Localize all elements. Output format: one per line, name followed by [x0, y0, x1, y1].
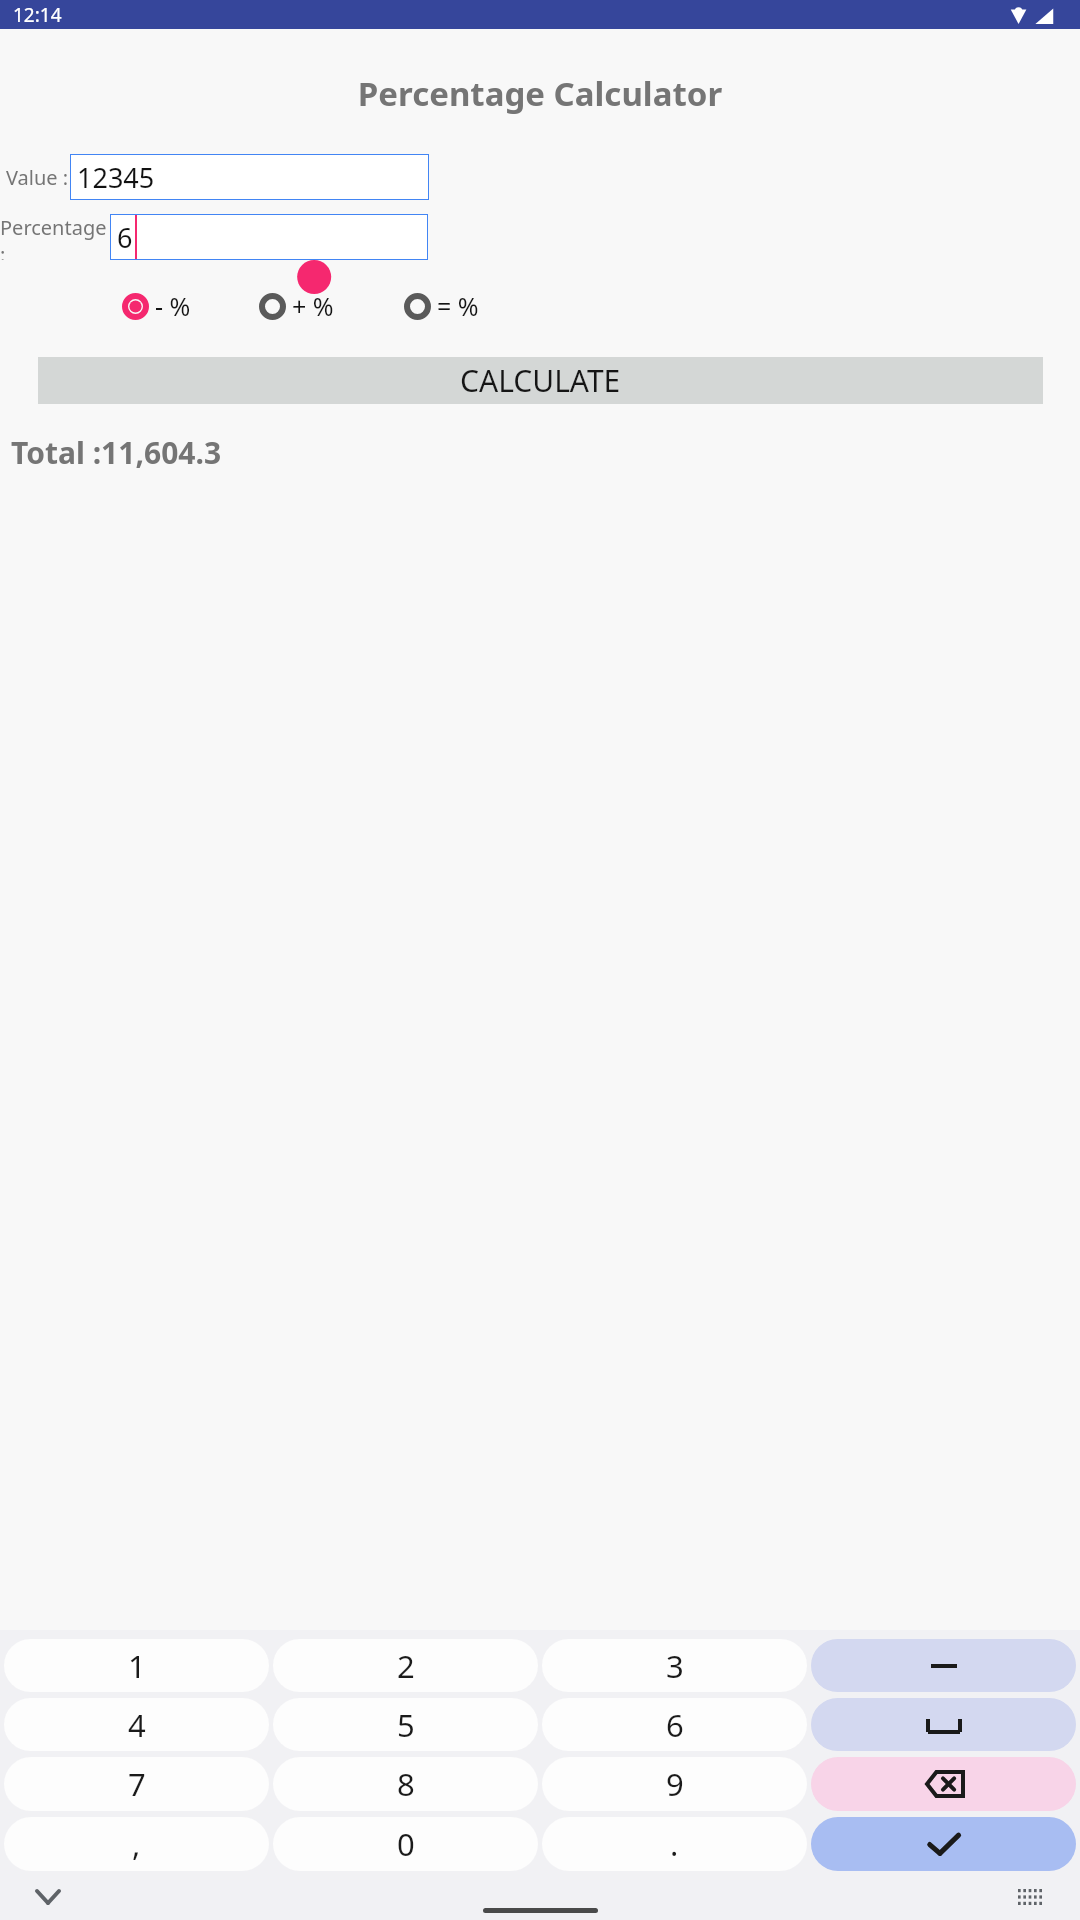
staticText: 7: [128, 1763, 146, 1805]
staticText: 8: [397, 1763, 415, 1805]
staticText: Total :11,604.3: [11, 432, 222, 473]
staticText: .: [670, 1823, 679, 1865]
button[interactable]: 5: [273, 1698, 538, 1751]
button[interactable]: = %: [402, 289, 481, 323]
button[interactable]: + %: [257, 289, 336, 323]
staticText: = %: [437, 289, 479, 323]
button[interactable]: ,: [4, 1817, 269, 1871]
staticText: 6: [666, 1704, 684, 1746]
staticText: 1: [128, 1645, 146, 1687]
button[interactable]: 1: [4, 1639, 269, 1692]
button[interactable]: 2: [273, 1639, 538, 1692]
button[interactable]: Hide keyboard: [30, 1879, 66, 1915]
staticText: 2: [397, 1645, 415, 1687]
staticText: Percentage Calculator: [0, 71, 1080, 116]
staticText: CALCULATE: [460, 360, 621, 401]
staticText: 4: [128, 1704, 146, 1746]
staticText: 12:14: [13, 2, 62, 28]
button[interactable]: 6: [110, 214, 428, 260]
staticText: Value :: [6, 164, 69, 191]
button[interactable]: 9: [542, 1757, 807, 1811]
button[interactable]: .: [542, 1817, 807, 1871]
staticText: 12:14: [13, 2, 62, 28]
button[interactable]: Change keyboard: [1012, 1879, 1048, 1915]
button[interactable]: 7: [4, 1757, 269, 1811]
button[interactable]: 4: [4, 1698, 269, 1751]
button[interactable]: Done: [811, 1817, 1076, 1871]
staticText: 0: [397, 1823, 415, 1865]
button[interactable]: Minus: [811, 1639, 1076, 1692]
button[interactable]: - %: [120, 289, 193, 323]
staticText: 12345: [77, 159, 155, 196]
button[interactable]: 6: [542, 1698, 807, 1751]
button[interactable]: 0: [273, 1817, 538, 1871]
button[interactable]: 12345: [70, 154, 429, 200]
staticText: 3: [666, 1645, 684, 1687]
button[interactable]: CALCULATE: [38, 357, 1043, 404]
button[interactable]: 8: [273, 1757, 538, 1811]
staticText: 9: [666, 1763, 684, 1805]
staticText: 6: [117, 219, 133, 256]
button[interactable]: Space: [811, 1698, 1076, 1751]
staticText: - %: [155, 289, 191, 323]
staticText: + %: [292, 289, 334, 323]
staticText: Percentage :: [0, 214, 110, 260]
button[interactable]: Backspace: [811, 1757, 1076, 1811]
staticText: 5: [397, 1704, 415, 1746]
staticText: ,: [132, 1823, 141, 1865]
button[interactable]: 3: [542, 1639, 807, 1692]
